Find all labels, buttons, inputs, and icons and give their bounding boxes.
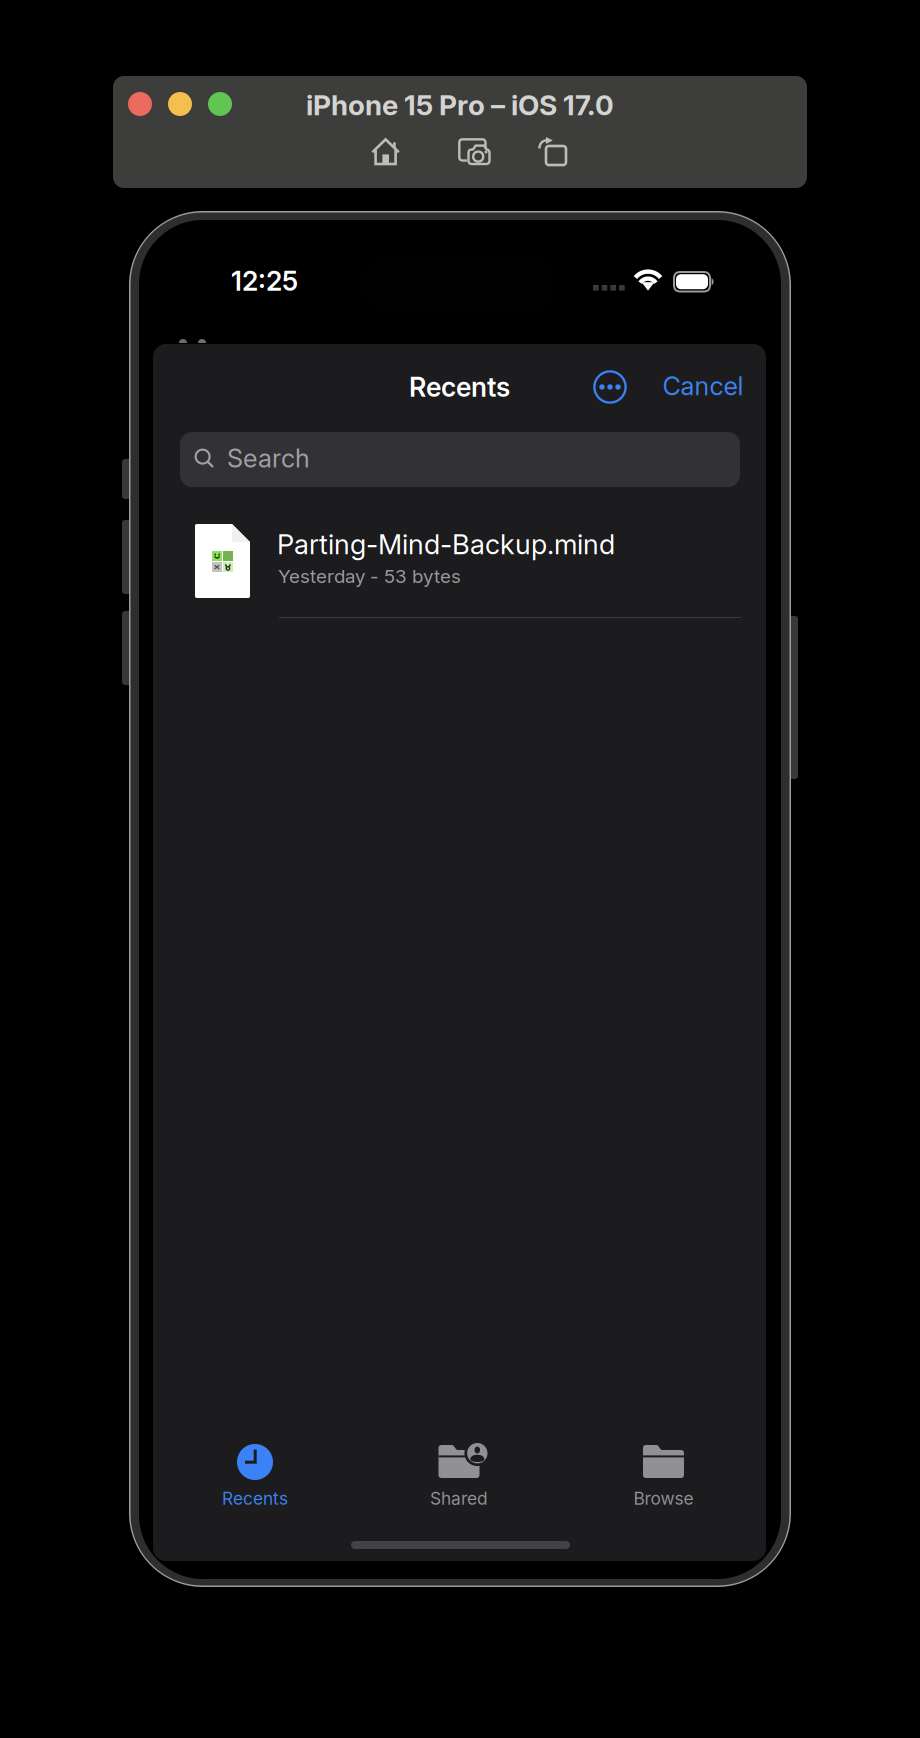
staticText: Yesterday - 53 bytes <box>278 565 461 588</box>
staticText: 12:25 <box>231 265 298 297</box>
button[interactable]: Close <box>128 92 152 116</box>
button[interactable]: Shared <box>357 1427 561 1517</box>
button[interactable]: Cancel <box>650 364 756 408</box>
button[interactable]: Minimize <box>168 92 192 116</box>
button[interactable]: Browse <box>561 1427 766 1517</box>
staticText: Recents <box>222 1488 288 1509</box>
staticText: Browse <box>633 1488 693 1509</box>
button[interactable]: Home <box>371 137 400 166</box>
button[interactable]: Screenshot <box>458 138 493 168</box>
button[interactable]: Rotate <box>538 137 567 166</box>
button[interactable]: Search <box>180 432 740 487</box>
button[interactable]: Parting-Mind-Backup.mind <box>180 513 740 609</box>
staticText: Shared <box>430 1488 488 1509</box>
button[interactable]: Zoom <box>208 92 232 116</box>
button[interactable]: Recents <box>153 1427 357 1517</box>
staticText: Recents <box>409 371 510 403</box>
staticText: Cancel <box>662 371 743 401</box>
staticText: Parting-Mind-Backup.mind <box>277 528 615 561</box>
staticText: Search <box>227 443 310 474</box>
staticText: iPhone 15 Pro – iOS 17.0 <box>306 88 614 122</box>
button[interactable]: More options <box>593 370 627 404</box>
